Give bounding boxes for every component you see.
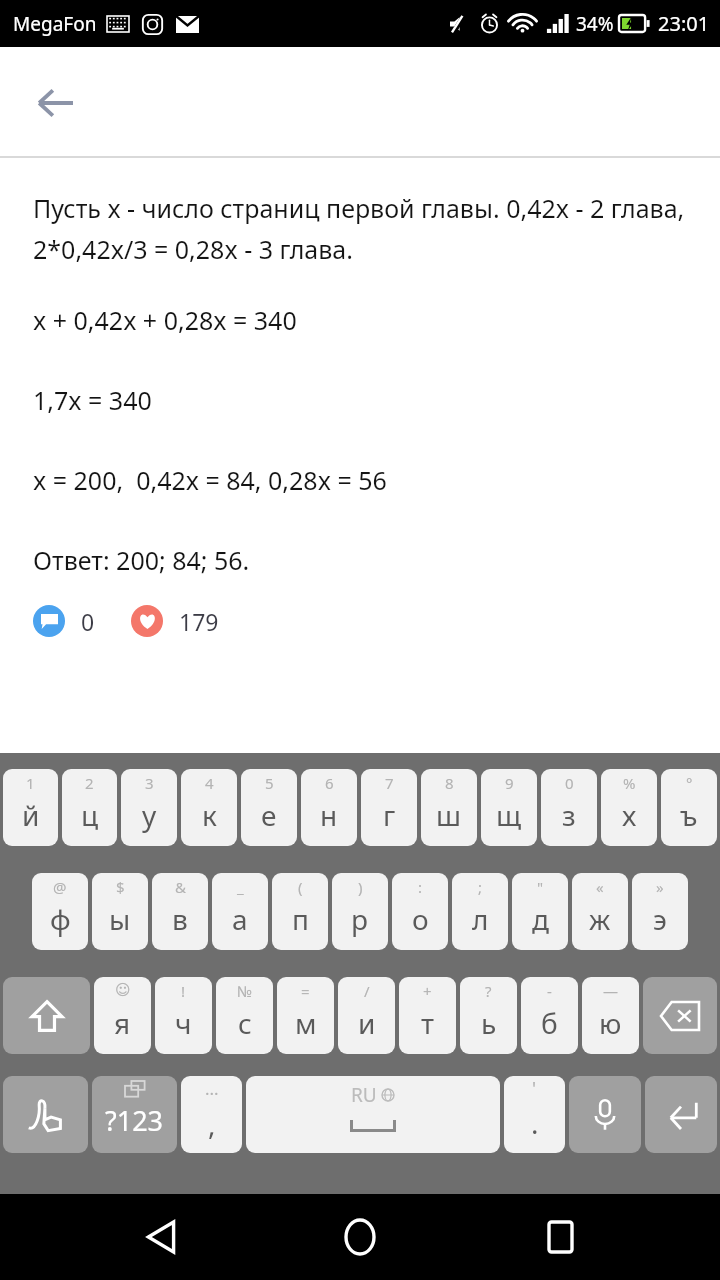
staticText: ° xyxy=(686,773,693,793)
staticText: б xyxy=(541,1004,558,1042)
staticText: / xyxy=(364,981,370,1001)
button[interactable]: Voice input xyxy=(569,1076,641,1153)
staticText: ъ xyxy=(680,796,698,834)
staticText: ) xyxy=(358,877,363,897)
staticText: й xyxy=(22,796,40,834)
button[interactable]: = xyxy=(277,977,334,1054)
button[interactable]: 7 xyxy=(361,769,417,846)
staticText: 1,7x = 340 xyxy=(33,383,152,417)
button[interactable]: @ xyxy=(32,873,88,950)
staticText: + xyxy=(423,981,432,1001)
staticText: & xyxy=(175,877,186,897)
button[interactable]: 3 xyxy=(121,769,177,846)
button[interactable]: № xyxy=(216,977,273,1054)
staticText: п xyxy=(292,900,309,938)
staticText: _ xyxy=(237,877,244,897)
button[interactable]: / xyxy=(338,977,395,1054)
staticText: № xyxy=(237,981,253,1001)
button[interactable]: 6 xyxy=(301,769,357,846)
staticText: ... xyxy=(205,1077,219,1100)
button[interactable]: Recents xyxy=(521,1198,599,1276)
button[interactable]: 9 xyxy=(481,769,537,846)
button[interactable]: - xyxy=(521,977,578,1054)
staticText: я xyxy=(114,1004,131,1042)
button[interactable]: 4 xyxy=(181,769,237,846)
staticText: " xyxy=(537,877,544,897)
staticText: RU xyxy=(351,1082,377,1108)
staticText: ; xyxy=(478,877,483,897)
staticText: а xyxy=(232,900,248,938)
button[interactable]: « xyxy=(572,873,628,950)
staticText: 7 xyxy=(385,773,394,793)
button[interactable]: $ xyxy=(92,873,148,950)
staticText: ч xyxy=(175,1004,192,1042)
staticText: , xyxy=(208,1105,216,1143)
staticText: ! xyxy=(181,981,186,1001)
staticText: ж xyxy=(589,900,611,938)
staticText: = xyxy=(301,981,310,1001)
staticText: к xyxy=(202,796,217,834)
staticText: $ xyxy=(116,877,125,897)
staticText: 3 xyxy=(145,773,154,793)
button[interactable]: 0 xyxy=(33,605,101,637)
button[interactable]: » xyxy=(632,873,688,950)
staticText: Пусть x - число страниц первой главы. 0,… xyxy=(33,191,704,267)
staticText: — xyxy=(603,981,619,1001)
staticText: x + 0,42x + 0,28x = 340 xyxy=(33,303,297,337)
staticText: 0 xyxy=(81,606,95,637)
button[interactable]: Space xyxy=(246,1076,500,1153)
staticText: г xyxy=(383,796,396,834)
staticText: ц xyxy=(81,796,99,834)
staticText: е xyxy=(261,796,277,834)
button[interactable]: + xyxy=(399,977,456,1054)
button[interactable]: Back xyxy=(22,70,88,136)
staticText: : xyxy=(418,877,423,897)
button[interactable]: 8 xyxy=(421,769,477,846)
staticText: о xyxy=(412,900,429,938)
button[interactable]: & xyxy=(152,873,208,950)
button[interactable]: 1 xyxy=(3,769,58,846)
staticText: ' xyxy=(532,1076,537,1101)
staticText: ш xyxy=(436,796,462,834)
button[interactable]: ' xyxy=(504,1076,565,1153)
staticText: ь xyxy=(481,1004,497,1042)
button[interactable]: 2 xyxy=(62,769,117,846)
staticText: 2 xyxy=(85,773,94,793)
staticText: ю xyxy=(599,1004,622,1042)
button[interactable]: Back xyxy=(122,1198,200,1276)
staticText: ы xyxy=(109,900,131,938)
staticText: MegaFon xyxy=(13,11,97,37)
staticText: т xyxy=(421,1004,435,1042)
button[interactable]: Home xyxy=(321,1198,399,1276)
staticText: и xyxy=(358,1004,376,1042)
button[interactable]: " xyxy=(512,873,568,950)
button[interactable]: % xyxy=(601,769,657,846)
staticText: % xyxy=(623,773,636,793)
button[interactable]: ? xyxy=(460,977,517,1054)
button[interactable]: ! xyxy=(155,977,212,1054)
staticText: ( xyxy=(298,877,303,897)
staticText: Ответ: 200; 84; 56. xyxy=(33,543,250,577)
button[interactable]: 5 xyxy=(241,769,297,846)
button[interactable]: _ xyxy=(212,873,268,950)
staticText: д xyxy=(532,900,549,938)
button[interactable]: ) xyxy=(332,873,388,950)
staticText: 23:01 xyxy=(658,10,710,37)
button[interactable]: : xyxy=(392,873,448,950)
button[interactable]: ° xyxy=(661,769,717,846)
staticText: 34% xyxy=(576,11,614,37)
button[interactable]: 179 xyxy=(131,605,225,637)
staticText: 179 xyxy=(179,606,219,637)
button[interactable]: Shift xyxy=(3,977,90,1054)
button[interactable]: ☺ xyxy=(94,977,151,1054)
button[interactable]: 0 xyxy=(541,769,597,846)
button[interactable]: ... xyxy=(181,1076,242,1153)
staticText: в xyxy=(172,900,188,938)
button[interactable]: ( xyxy=(272,873,328,950)
button[interactable]: Backspace xyxy=(643,977,717,1054)
button[interactable]: ?123 xyxy=(92,1076,177,1153)
button[interactable]: Handwriting xyxy=(3,1076,88,1153)
button[interactable]: Enter xyxy=(645,1076,717,1153)
button[interactable]: ; xyxy=(452,873,508,950)
button[interactable]: — xyxy=(582,977,639,1054)
